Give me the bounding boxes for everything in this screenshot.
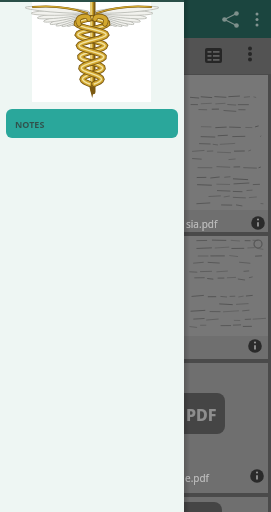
button[interactable]: NOTES	[6, 109, 178, 138]
button[interactable]	[184, 363, 268, 493]
staticText: NOTES	[15, 118, 45, 130]
button[interactable]	[184, 0, 271, 38]
button[interactable]	[184, 236, 268, 359]
staticText: e.pdf	[185, 471, 210, 485]
button[interactable]	[184, 75, 268, 232]
staticText: PDF	[186, 404, 217, 426]
button[interactable]	[184, 38, 271, 74]
button[interactable]	[184, 497, 268, 512]
staticText: sia.pdf	[186, 217, 218, 231]
